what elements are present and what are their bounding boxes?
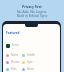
button[interactable]: Featured [6,31,20,35]
staticText: No Ads. No Logins. [0,9,64,14]
button[interactable]: Music [22,67,37,71]
button[interactable]: Secure vault [6,43,20,49]
button[interactable]: Sync [22,60,37,64]
staticText: Music [27,67,35,71]
staticText: Photos [11,60,20,64]
staticText: Sync [27,60,33,64]
staticText: Privacy First [0,5,64,9]
staticText: Secure vault [12,43,20,49]
button[interactable]: Health [22,53,37,57]
staticText: Health [27,53,36,57]
button[interactable]: Photos [6,60,21,64]
staticText: Notes [11,53,19,57]
button[interactable]: Notes [6,53,21,57]
button[interactable]: Files [6,67,21,71]
staticText: Files [11,67,17,71]
staticText: Built in Ethical Sync [0,13,64,18]
